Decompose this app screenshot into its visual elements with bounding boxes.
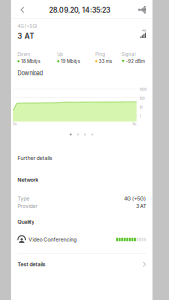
staticText: 28.09.20, 14:35:23 [49,6,110,14]
button[interactable]: Back [0,0,169,300]
staticText: Network [17,177,38,183]
button[interactable]: Test details [17,256,146,272]
staticText: Down [17,52,30,57]
staticText: 4G (+5G) [124,195,146,202]
staticText: Video Conferencing [29,236,77,243]
staticText: 18 Mbit/s [21,58,40,64]
staticText: Type [17,195,29,202]
staticText: 1000 [139,87,146,92]
staticText: Signal [122,52,136,57]
staticText: 8s [133,122,137,126]
staticText: 1 [139,114,140,118]
staticText: 3 AT [17,32,34,40]
staticText: 0s [13,122,17,126]
staticText: Provider [17,203,37,209]
staticText: Quality [17,219,34,225]
staticText: 100 [139,96,144,101]
staticText: 4G (+5G) [17,24,37,29]
staticText: 10 [139,105,142,109]
staticText: 19 Mbit/s [61,58,80,64]
staticText: Ping [95,52,105,57]
staticText: Further details [17,155,52,161]
staticText: 33 ms [99,58,112,64]
staticText: -92 dBm [126,58,145,64]
staticText: 4G [142,29,146,32]
staticText: 3 AT [136,203,146,209]
button[interactable]: Share [0,0,169,300]
staticText: Up [57,52,63,57]
staticText: Download [17,70,42,77]
staticText: Test details [17,261,45,267]
